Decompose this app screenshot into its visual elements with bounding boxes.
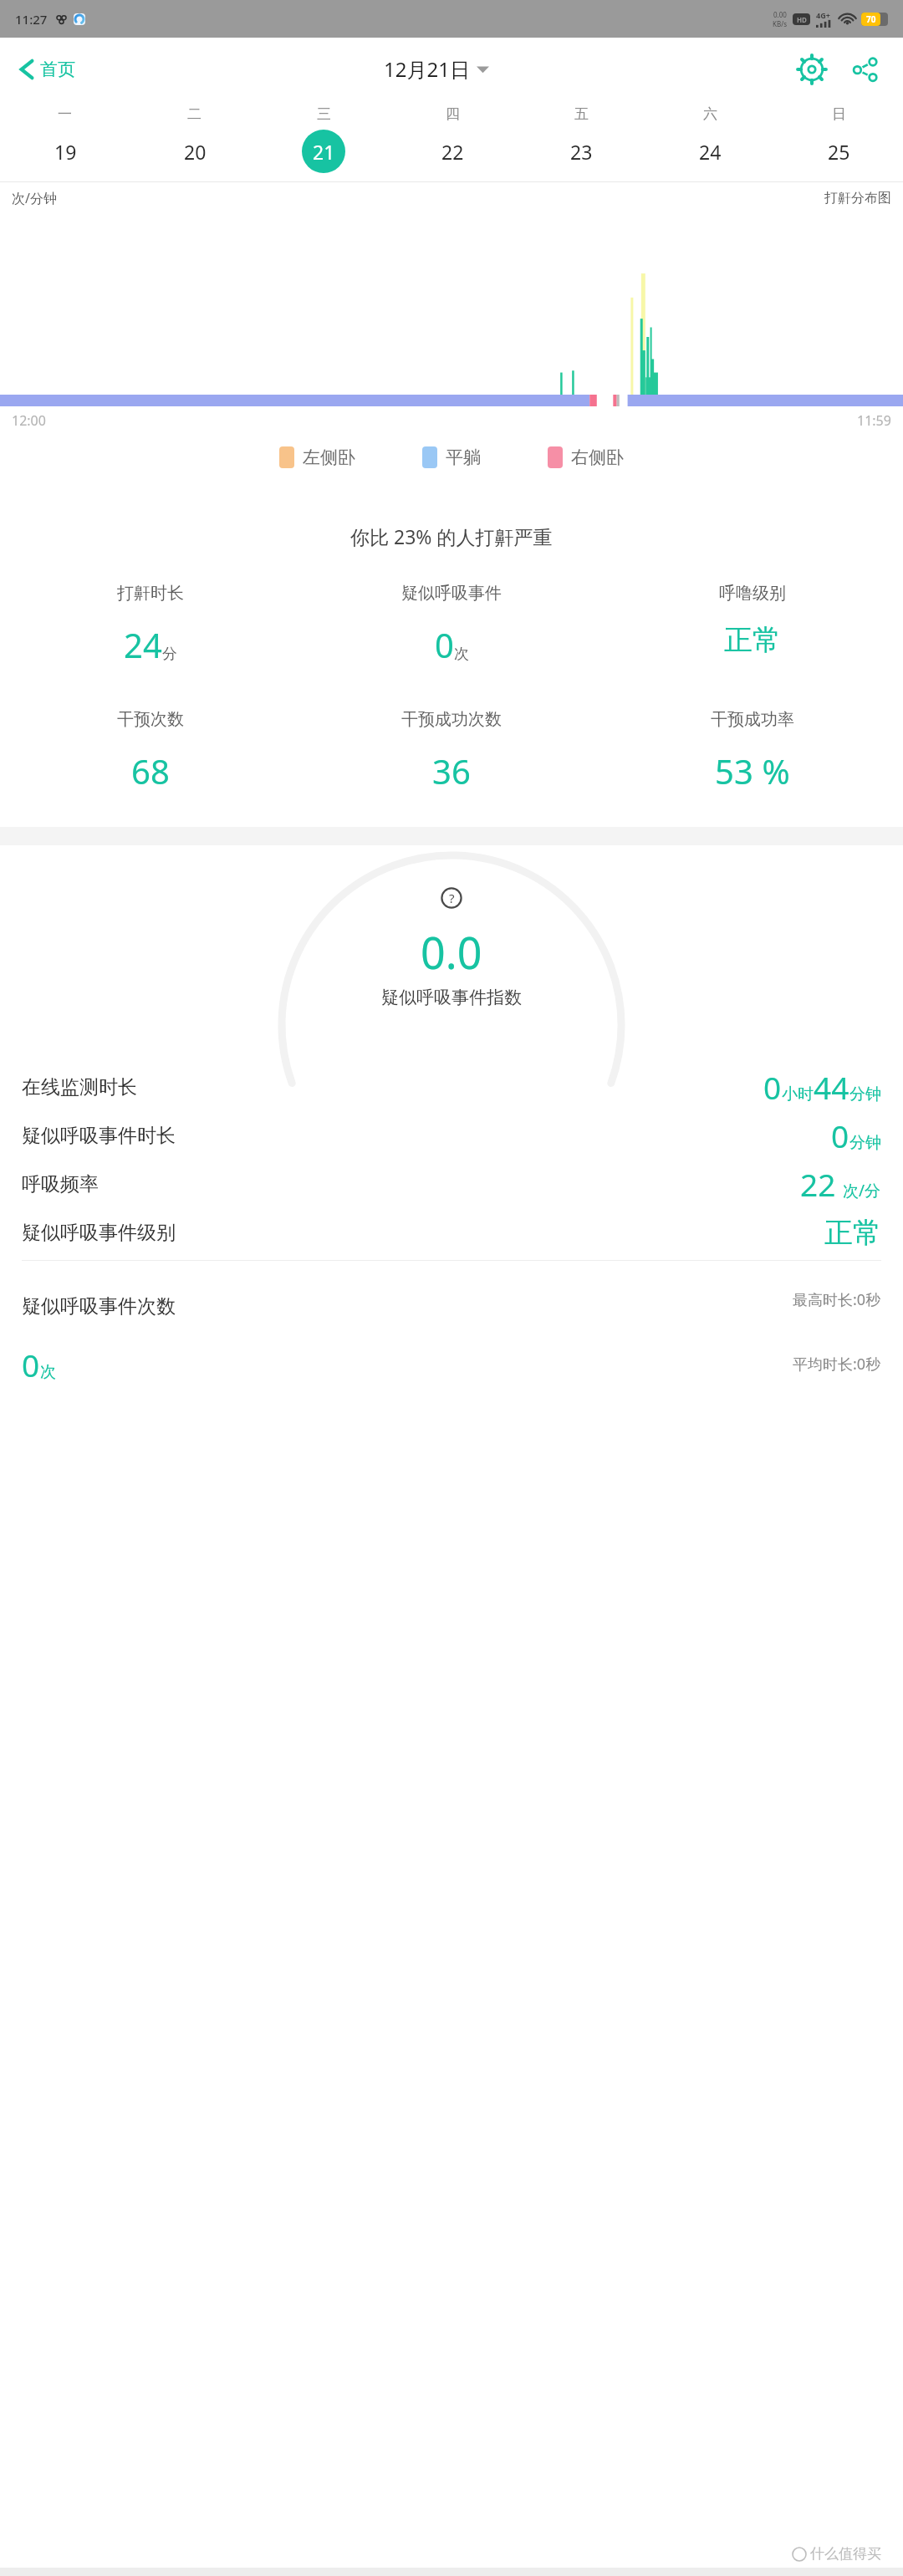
staticText: 六 — [703, 105, 717, 123]
staticText: 疑似呼吸事件级别 — [22, 1221, 176, 1245]
staticText: 0 — [22, 1344, 40, 1385]
staticText: 疑似呼吸事件 — [401, 583, 502, 604]
staticText: 平均时长:0秒 — [793, 1354, 881, 1375]
button[interactable]: 20 — [130, 130, 259, 173]
staticText: 次 — [40, 1362, 56, 1382]
button[interactable]: 12月21日 — [380, 52, 492, 86]
staticText: 次/分钟 — [12, 189, 57, 207]
staticText: 在线监测时长 — [22, 1075, 137, 1099]
staticText: 二 — [187, 105, 202, 123]
staticText: 干预成功次数 — [401, 709, 502, 730]
staticText: 36 — [432, 748, 471, 793]
button[interactable]: 疑似呼吸事件 — [301, 583, 602, 667]
button[interactable]: 疑似呼吸事件级别 — [22, 1208, 881, 1257]
staticText: KB/s — [773, 19, 787, 28]
staticText: 0 — [831, 1115, 849, 1156]
staticText: 三 — [317, 105, 331, 123]
button[interactable]: 打鼾时长 — [0, 583, 301, 667]
button[interactable]: 呼噜级别 — [602, 583, 903, 658]
staticText: 小时 — [782, 1084, 814, 1104]
button[interactable]: 在线监测时长 — [22, 1063, 881, 1111]
staticText: HD — [797, 15, 807, 24]
staticText: 打鼾分布图 — [824, 190, 891, 207]
staticText: 22 — [800, 1163, 836, 1205]
staticText: 24 — [124, 622, 162, 667]
button[interactable]: 19 — [0, 130, 130, 173]
staticText: 4G+ — [816, 10, 830, 20]
button[interactable]: 24 — [645, 130, 774, 173]
button[interactable]: 干预成功次数 — [301, 709, 602, 793]
staticText: 12月21日 — [384, 55, 470, 83]
button[interactable]: Help — [439, 885, 464, 911]
staticText: 呼噜级别 — [719, 583, 786, 604]
button[interactable]: 25 — [774, 130, 903, 173]
staticText: 次/分 — [843, 1180, 881, 1201]
staticText: 21 — [313, 139, 335, 165]
staticText: 分钟 — [849, 1084, 881, 1104]
staticText: 12:00 — [12, 411, 46, 430]
button[interactable]: 22 — [388, 130, 517, 173]
staticText: 你比 23% 的人打鼾严重 — [350, 523, 553, 549]
staticText: ? — [449, 890, 455, 906]
staticText: 次 — [454, 645, 469, 664]
staticText: 五 — [574, 105, 589, 123]
button[interactable]: 疑似呼吸事件次数 — [22, 1261, 881, 1403]
staticText: 53 — [715, 748, 753, 793]
staticText: 右侧卧 — [571, 446, 624, 468]
button[interactable]: 呼吸频率 — [22, 1160, 881, 1208]
staticText: 疑似呼吸事件指数 — [381, 987, 522, 1008]
staticText: 干预成功率 — [711, 709, 794, 730]
staticText: 分 — [162, 645, 177, 664]
staticText: 19 — [54, 139, 77, 165]
staticText: 正常 — [724, 622, 781, 658]
button[interactable]: 21 — [259, 130, 388, 173]
staticText: 疑似呼吸事件时长 — [22, 1124, 176, 1148]
staticText: 打鼾时长 — [117, 583, 184, 604]
button[interactable]: 干预次数 — [0, 709, 301, 793]
button[interactable]: 干预成功率 — [602, 709, 903, 793]
button[interactable]: 首页 — [13, 52, 80, 87]
staticText: 干预次数 — [117, 709, 184, 730]
button[interactable]: Settings — [793, 50, 831, 89]
staticText: 分钟 — [849, 1133, 881, 1153]
staticText: 44 — [814, 1066, 849, 1108]
staticText: 0 — [435, 622, 454, 667]
staticText: 左侧卧 — [303, 446, 355, 468]
staticText: 23 — [570, 139, 593, 165]
staticText: 24 — [699, 139, 722, 165]
staticText: 11:27 — [15, 11, 48, 28]
staticText: 0 — [763, 1066, 782, 1108]
staticText: 四 — [446, 105, 460, 123]
staticText: 22 — [441, 139, 464, 165]
staticText: 25 — [828, 139, 850, 165]
staticText: 平躺 — [446, 446, 481, 468]
staticText: 什么值得买 — [810, 2545, 881, 2563]
staticText: 疑似呼吸事件次数 — [22, 1294, 176, 1319]
staticText: 呼吸频率 — [22, 1172, 99, 1196]
staticText: 11:59 — [857, 411, 891, 430]
staticText: % — [753, 748, 790, 793]
staticText: 首页 — [40, 59, 75, 80]
button[interactable]: 疑似呼吸事件时长 — [22, 1111, 881, 1160]
staticText: 0.00 — [773, 10, 787, 19]
staticText: 日 — [832, 105, 846, 123]
staticText: 正常 — [824, 1215, 881, 1251]
staticText: 70 — [866, 13, 876, 25]
button[interactable]: Share — [846, 50, 885, 89]
staticText: 一 — [58, 105, 72, 123]
staticText: 0.0 — [421, 922, 482, 982]
staticText: 68 — [131, 748, 170, 793]
staticText: 20 — [184, 139, 207, 165]
staticText: 最高时长:0秒 — [793, 1289, 881, 1310]
button[interactable]: 23 — [517, 130, 645, 173]
